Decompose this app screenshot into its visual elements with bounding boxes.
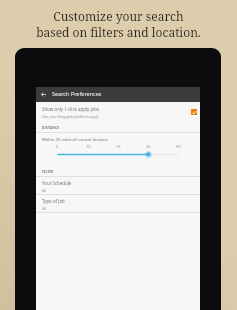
button[interactable]: Back [38, 89, 49, 100]
staticText: Customize your search [53, 8, 184, 24]
staticText: Type of Job [42, 198, 65, 204]
staticText: 25 [146, 144, 151, 149]
staticText: Search Preferences [52, 90, 102, 97]
button[interactable]: Show only 1-click apply jobs [36, 102, 200, 122]
staticText: 5 [56, 144, 59, 149]
button[interactable]: Type of Job [36, 194, 200, 212]
staticText: Your Schedule [42, 180, 72, 186]
staticText: 10 [86, 144, 91, 149]
staticText: DISTANCE [42, 126, 60, 130]
staticText: 50 [176, 144, 181, 149]
staticText: FILTER [42, 170, 54, 174]
staticText: based on filters and location. [36, 24, 201, 40]
button[interactable]: Your Schedule [36, 176, 200, 195]
staticText: 15 [116, 144, 121, 149]
staticText: All [42, 188, 47, 193]
staticText: Within 25 miles of current location [42, 137, 109, 143]
staticText: Use your Snagajob profile to apply [42, 114, 99, 119]
staticText: Show only 1-click apply jobs [42, 106, 100, 112]
staticText: All [42, 206, 47, 211]
